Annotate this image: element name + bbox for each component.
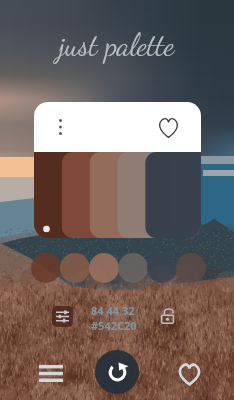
button[interactable]: Favourites xyxy=(175,360,203,388)
staticText: 84 44 32 xyxy=(91,303,135,318)
button[interactable] xyxy=(118,253,148,283)
button[interactable] xyxy=(60,253,90,283)
staticText: #542C20 xyxy=(91,318,137,333)
button[interactable]: Generate palette xyxy=(95,350,139,394)
button[interactable] xyxy=(31,253,61,283)
button[interactable]: Adjust palette xyxy=(52,306,73,327)
button[interactable]: Menu xyxy=(36,358,66,388)
button[interactable] xyxy=(176,253,206,283)
button[interactable] xyxy=(89,253,119,283)
button[interactable] xyxy=(147,253,177,283)
button[interactable]: More options xyxy=(50,117,70,137)
button[interactable]: Lock colour xyxy=(157,305,179,327)
staticText: just palette xyxy=(59,27,175,63)
button[interactable]: Save palette xyxy=(155,114,181,140)
